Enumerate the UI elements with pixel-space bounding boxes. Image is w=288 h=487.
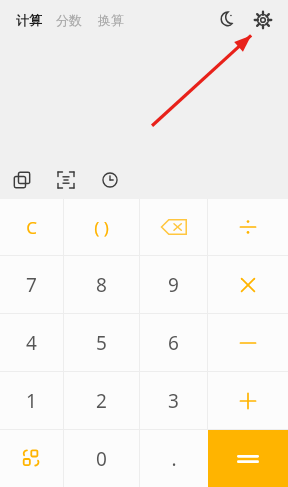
button[interactable]: Settings xyxy=(248,5,278,35)
button[interactable] xyxy=(208,372,288,429)
button[interactable] xyxy=(208,256,288,313)
staticText: 0 xyxy=(96,446,107,472)
button[interactable]: 换算 xyxy=(98,8,124,32)
staticText: ( ) xyxy=(94,216,109,239)
button[interactable]: C xyxy=(0,199,63,255)
button[interactable] xyxy=(208,314,288,371)
button[interactable]: History xyxy=(92,162,128,198)
button[interactable]: 6 xyxy=(140,314,207,371)
button[interactable]: Copy xyxy=(4,162,40,198)
button[interactable]: 3 xyxy=(140,372,207,429)
button[interactable]: 1 xyxy=(0,372,63,429)
staticText: C xyxy=(26,216,37,239)
staticText: 1 xyxy=(26,388,37,414)
button[interactable] xyxy=(140,199,207,255)
staticText: 7 xyxy=(26,272,37,298)
staticText: 6 xyxy=(168,330,179,356)
staticText: 3 xyxy=(168,388,179,414)
staticText: 8 xyxy=(96,272,107,298)
button[interactable] xyxy=(208,199,288,255)
button[interactable]: 8 xyxy=(64,256,139,313)
staticText: 换算 xyxy=(98,12,124,28)
staticText: 计算 xyxy=(16,12,42,28)
button[interactable]: 5 xyxy=(64,314,139,371)
button[interactable] xyxy=(0,430,63,487)
staticText: 分数 xyxy=(56,12,82,28)
button[interactable]: Night mode xyxy=(212,5,242,35)
button[interactable]: 计算 xyxy=(16,8,42,32)
staticText: 9 xyxy=(168,272,179,298)
staticText: 5 xyxy=(96,330,107,356)
button[interactable]: Equals xyxy=(208,430,288,487)
staticText: 4 xyxy=(26,330,37,356)
button[interactable]: . xyxy=(140,430,208,487)
button[interactable]: 分数 xyxy=(56,8,82,32)
button[interactable]: ( ) xyxy=(64,199,139,255)
button[interactable]: Scan xyxy=(48,162,84,198)
button[interactable]: 7 xyxy=(0,256,63,313)
staticText: . xyxy=(171,446,177,472)
button[interactable]: 4 xyxy=(0,314,63,371)
button[interactable]: 9 xyxy=(140,256,207,313)
staticText: 2 xyxy=(96,388,107,414)
button[interactable]: 0 xyxy=(64,430,139,487)
button[interactable]: 2 xyxy=(64,372,139,429)
